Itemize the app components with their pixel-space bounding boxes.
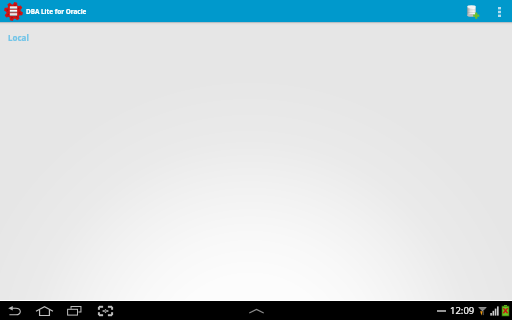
staticText: 12:09 bbox=[450, 304, 475, 317]
button[interactable]: Recent apps bbox=[64, 301, 84, 320]
button[interactable]: Home bbox=[34, 301, 54, 320]
button[interactable]: Add database bbox=[462, 0, 488, 22]
staticText: Local bbox=[8, 32, 29, 43]
staticText: DBA Lite for Oracle bbox=[26, 7, 87, 16]
button[interactable]: System status bbox=[437, 304, 512, 317]
button[interactable]: Show notifications bbox=[246, 301, 266, 320]
button[interactable]: Screenshot bbox=[95, 301, 115, 320]
button[interactable]: Local bbox=[8, 32, 29, 43]
button[interactable]: Back bbox=[5, 301, 25, 320]
button[interactable]: More options bbox=[488, 0, 510, 22]
button[interactable]: DBA Lite for Oracle bbox=[0, 0, 91, 22]
